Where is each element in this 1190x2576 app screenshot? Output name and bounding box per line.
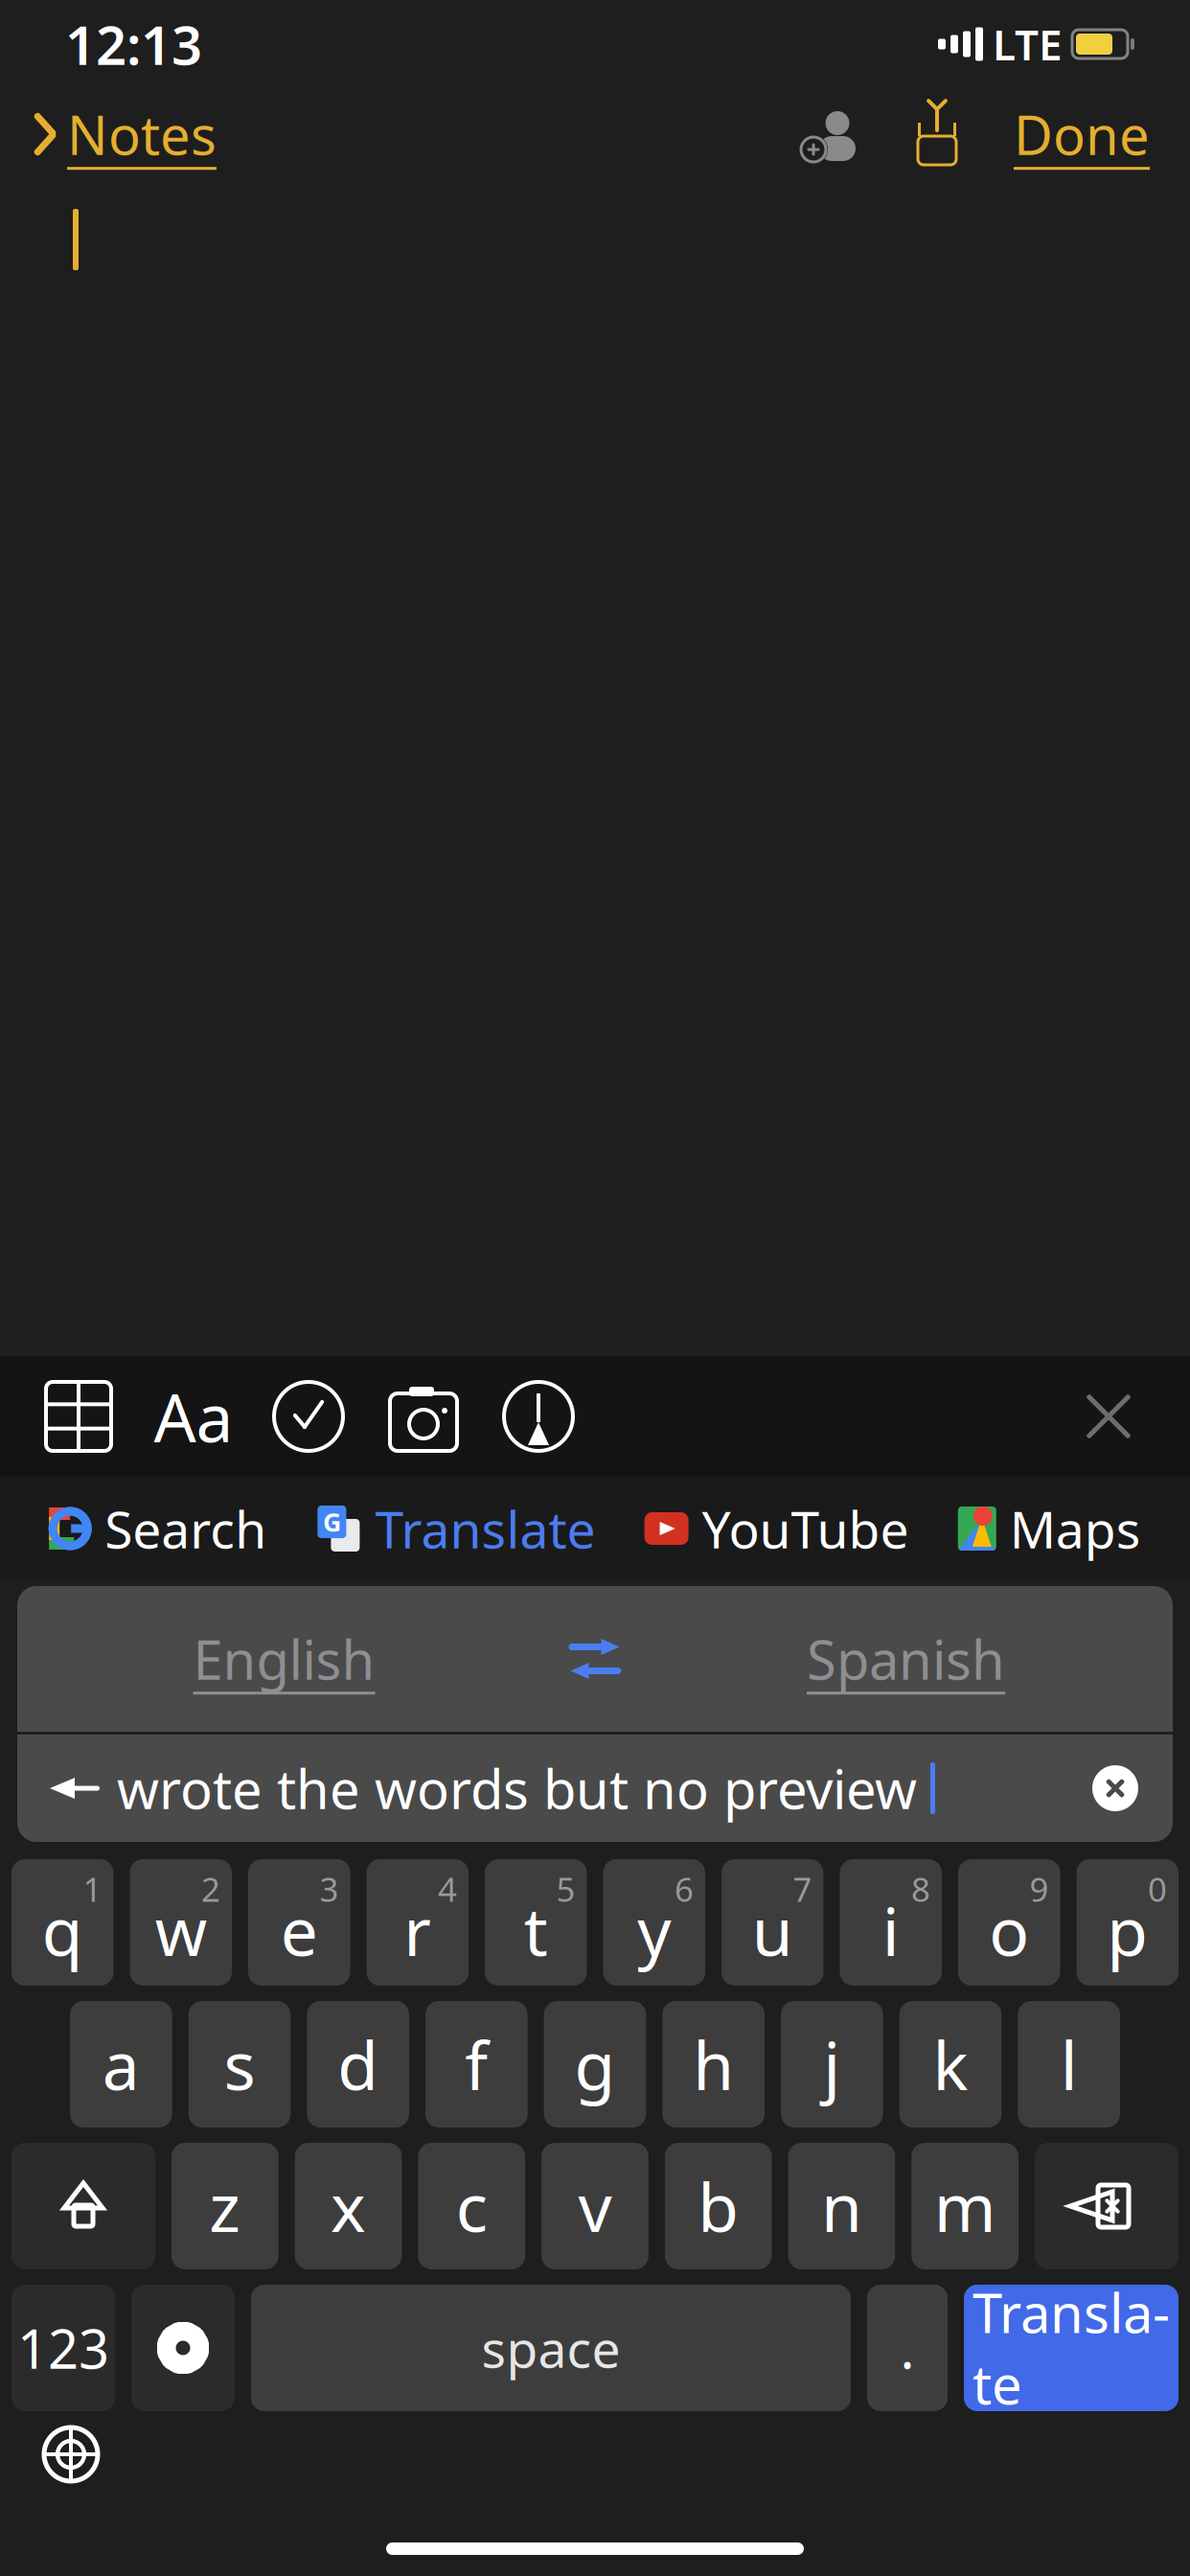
button[interactable]: Notes [0,85,232,183]
staticText: t [524,1886,548,1974]
staticText: 4 [438,1867,457,1911]
button[interactable]: 3 [248,1859,350,1986]
button[interactable]: Format [136,1364,251,1469]
button[interactable]: z [172,2143,279,2269]
staticText: Notes [67,99,217,170]
staticText: q [42,1886,83,1974]
button[interactable]: Next keyboard [23,2411,119,2497]
button[interactable]: G [316,1483,595,1574]
button[interactable]: k [899,2001,1002,2127]
button[interactable]: 2 [130,1859,232,1986]
button[interactable]: n [788,2143,895,2269]
button[interactable]: 8 [840,1859,942,1986]
staticText: c [456,2162,487,2250]
staticText: i [882,1886,899,1974]
staticText: Maps [1010,1495,1141,1562]
staticText: h [693,2020,734,2108]
staticText: 0 [1148,1867,1167,1911]
button[interactable]: f [425,2001,528,2127]
button[interactable]: Clear text [1075,1752,1156,1825]
button[interactable]: Swap languages [551,1628,639,1690]
button[interactable]: 9 [958,1859,1060,1986]
staticText: Spanish [807,1623,1005,1695]
button[interactable]: Close [1056,1364,1161,1469]
staticText: g [574,2020,616,2108]
staticText: G [323,1505,341,1539]
staticText: m [934,2162,996,2250]
button[interactable]: l [1018,2001,1120,2127]
staticText: s [224,2020,255,2108]
staticText: z [209,2162,241,2250]
staticText: r [404,1886,431,1974]
staticText: YouTube [702,1495,909,1562]
staticText: u [752,1886,793,1974]
button[interactable]: m [911,2143,1018,2269]
button[interactable]: Delete [1035,2143,1179,2269]
staticText: Translate [375,1495,595,1562]
button[interactable]: YouTube [644,1483,909,1574]
staticText: v [578,2162,612,2250]
button[interactable]: 7 [721,1859,824,1986]
button[interactable]: Checklist [251,1364,366,1469]
staticText: y [637,1886,671,1974]
button[interactable]: . [867,2285,948,2411]
button[interactable]: c [418,2143,525,2269]
staticText: w [155,1886,207,1974]
staticText: 9 [1030,1867,1049,1911]
button[interactable]: Translate [964,2285,1179,2411]
button[interactable]: 0 [1076,1859,1179,1986]
button[interactable]: Maps [958,1483,1141,1574]
button[interactable]: b [665,2143,772,2269]
staticText: Aa [154,1372,233,1461]
button[interactable]: d [307,2001,409,2127]
staticText: 3 [320,1867,339,1911]
button[interactable]: Keyboard settings [131,2285,235,2411]
button[interactable]: a [70,2001,172,2127]
button[interactable]: 6 [603,1859,705,1986]
staticText: 1 [83,1867,102,1911]
staticText: e [280,1886,318,1974]
staticText: Search [105,1495,267,1562]
button[interactable]: Back [33,1752,117,1825]
staticText: l [1060,2020,1078,2108]
button[interactable]: 123 [11,2285,115,2411]
staticText: n [821,2162,862,2250]
staticText: 6 [675,1867,694,1911]
button[interactable]: 5 [485,1859,587,1986]
staticText: d [337,2020,379,2108]
button[interactable]: Done [1014,87,1150,181]
button[interactable]: g [544,2001,646,2127]
staticText: 5 [556,1867,575,1911]
staticText: x [331,2162,366,2250]
staticText: Translate [973,2277,1170,2419]
button[interactable]: Camera [366,1364,481,1469]
button[interactable]: space [251,2285,851,2411]
button[interactable]: Search [49,1483,267,1574]
button[interactable]: v [541,2143,648,2269]
button[interactable]: Shift [11,2143,155,2269]
staticText: LTE [993,16,1063,72]
staticText: . [900,2312,915,2384]
staticText: k [933,2020,968,2108]
button[interactable]: x [295,2143,402,2269]
button[interactable]: Share [910,103,964,165]
button[interactable]: 4 [366,1859,469,1986]
staticText: English [193,1623,375,1695]
staticText: 8 [911,1867,930,1911]
button[interactable]: 1 [11,1859,114,1986]
button[interactable]: s [188,2001,291,2127]
staticText: j [823,2020,841,2108]
button[interactable]: h [662,2001,765,2127]
staticText: 123 [17,2312,109,2384]
staticText: space [481,2314,620,2382]
button[interactable]: Markup [481,1364,596,1469]
button[interactable]: English [17,1604,551,1714]
staticText: a [102,2020,140,2108]
staticText: 7 [793,1867,812,1911]
button[interactable]: Add People [797,104,860,164]
button[interactable]: Table [21,1364,136,1469]
button[interactable]: j [781,2001,883,2127]
staticText: Done [1014,99,1150,170]
staticText: b [698,2162,739,2250]
button[interactable]: Spanish [639,1604,1173,1714]
